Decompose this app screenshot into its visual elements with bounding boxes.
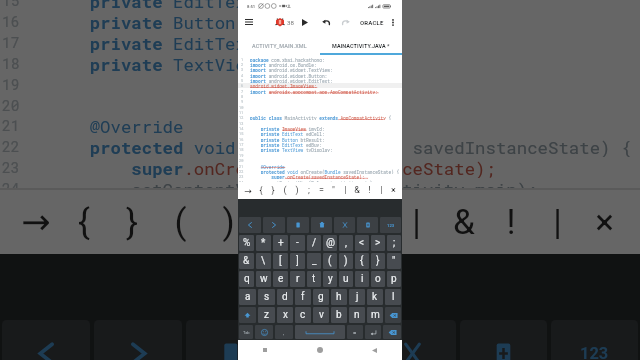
button[interactable]: {: [254, 182, 267, 199]
button[interactable]: [385, 307, 401, 323]
button[interactable]: *: [256, 235, 271, 251]
button[interactable]: v: [313, 307, 329, 323]
button[interactable]: →: [241, 182, 254, 199]
button[interactable]: ): [339, 253, 353, 269]
button[interactable]: Redo: [339, 15, 353, 29]
button[interactable]: x: [277, 307, 293, 323]
button[interactable]: l: [385, 289, 401, 305]
button[interactable]: [365, 325, 381, 339]
button[interactable]: (: [323, 253, 337, 269]
button[interactable]: ): [204, 188, 252, 254]
button[interactable]: [263, 217, 285, 233]
button[interactable]: &: [440, 188, 487, 254]
button[interactable]: |: [375, 182, 387, 199]
button[interactable]: [239, 217, 261, 233]
button[interactable]: =: [299, 188, 346, 254]
button[interactable]: z: [258, 307, 275, 323]
button[interactable]: ;: [387, 235, 401, 251]
button[interactable]: a: [239, 289, 256, 305]
button[interactable]: m: [367, 307, 383, 323]
button[interactable]: !: [487, 188, 534, 254]
button[interactable]: %: [239, 235, 254, 251]
button[interactable]: [239, 307, 256, 323]
button[interactable]: !: [363, 182, 375, 199]
button[interactable]: o: [371, 271, 385, 287]
button[interactable]: ": [387, 253, 401, 269]
button[interactable]: [255, 325, 273, 339]
button[interactable]: ": [346, 188, 393, 254]
button[interactable]: {: [60, 188, 108, 254]
button[interactable]: [357, 217, 378, 233]
button[interactable]: ×: [387, 182, 399, 199]
button[interactable]: p: [387, 271, 401, 287]
button[interactable]: w: [256, 271, 271, 287]
button[interactable]: +: [273, 235, 288, 251]
button[interactable]: ): [291, 182, 303, 199]
button[interactable]: k: [367, 289, 383, 305]
button[interactable]: MAINACTIVITY.JAVA *: [320, 32, 402, 55]
button[interactable]: <: [355, 235, 369, 251]
button[interactable]: [2, 320, 90, 360]
button[interactable]: @: [323, 235, 337, 251]
button[interactable]: _: [307, 253, 321, 269]
button[interactable]: ;: [303, 182, 315, 199]
button[interactable]: g: [313, 289, 329, 305]
button[interactable]: [287, 217, 309, 233]
button[interactable]: [: [273, 253, 288, 269]
button[interactable]: c: [295, 307, 311, 323]
button[interactable]: →: [12, 188, 60, 254]
button[interactable]: &: [351, 182, 363, 199]
button[interactable]: u: [339, 271, 353, 287]
button[interactable]: d: [277, 289, 293, 305]
button[interactable]: }: [108, 188, 156, 254]
button[interactable]: ;: [252, 188, 299, 254]
button[interactable]: [369, 320, 456, 360]
button[interactable]: e: [273, 271, 288, 287]
button[interactable]: Back: [347, 340, 402, 360]
button[interactable]: Menu: [242, 15, 256, 29]
button[interactable]: ACTIVITY_MAIN.XML: [238, 32, 320, 55]
button[interactable]: Undo: [319, 15, 333, 29]
button[interactable]: }: [267, 182, 279, 199]
button[interactable]: (: [279, 182, 291, 199]
button[interactable]: >: [371, 235, 385, 251]
button[interactable]: {: [355, 253, 369, 269]
button[interactable]: -: [290, 235, 305, 251]
button[interactable]: [295, 325, 345, 339]
button[interactable]: 38: [275, 15, 294, 29]
button[interactable]: s: [258, 289, 275, 305]
button[interactable]: \: [256, 253, 271, 269]
button[interactable]: [94, 320, 182, 360]
button[interactable]: 123: [380, 217, 401, 233]
button[interactable]: =: [315, 182, 327, 199]
button[interactable]: }: [371, 253, 385, 269]
button[interactable]: y: [323, 271, 337, 287]
button[interactable]: More options: [387, 16, 399, 28]
button[interactable]: ": [327, 182, 339, 199]
button[interactable]: Tab: [239, 325, 253, 339]
button[interactable]: Run: [298, 15, 312, 29]
button[interactable]: q: [239, 271, 254, 287]
button[interactable]: [460, 320, 547, 360]
button[interactable]: ]: [290, 253, 305, 269]
button[interactable]: i: [355, 271, 369, 287]
button[interactable]: [383, 325, 401, 339]
button[interactable]: /: [307, 235, 321, 251]
button[interactable]: |: [534, 188, 581, 254]
button[interactable]: |: [393, 188, 440, 254]
button[interactable]: r: [290, 271, 305, 287]
button[interactable]: [334, 217, 355, 233]
button[interactable]: ORACLE: [360, 15, 384, 29]
button[interactable]: [311, 217, 332, 233]
button[interactable]: b: [331, 307, 347, 323]
button[interactable]: =: [347, 325, 363, 339]
button[interactable]: Recent apps: [238, 340, 292, 360]
button[interactable]: (: [156, 188, 204, 254]
button[interactable]: |: [339, 182, 351, 199]
button[interactable]: j: [349, 289, 365, 305]
button[interactable]: n: [349, 307, 365, 323]
button[interactable]: ×: [581, 188, 628, 254]
button[interactable]: &: [239, 253, 254, 269]
button[interactable]: ,: [275, 325, 293, 339]
button[interactable]: [278, 320, 365, 360]
